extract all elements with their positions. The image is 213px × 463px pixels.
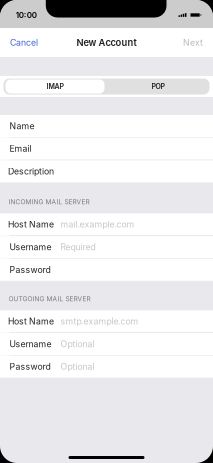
staticText: Username [10, 339, 52, 349]
button[interactable]: Host Name [0, 213, 213, 235]
staticText: IMAP [46, 82, 63, 91]
staticText: Optional [61, 339, 95, 349]
button[interactable]: Host Name [0, 310, 213, 332]
staticText: INCOMING MAIL SERVER [9, 198, 90, 206]
staticText: Password [10, 265, 51, 275]
button[interactable]: Email [0, 138, 213, 160]
button[interactable]: POP [106, 78, 209, 94]
staticText: Next [183, 37, 203, 48]
button[interactable]: Password [0, 259, 213, 281]
button[interactable]: Username [0, 333, 213, 355]
staticText: Optional [61, 361, 95, 372]
staticText: Required [61, 242, 96, 252]
staticText: Username [10, 242, 52, 252]
staticText: 10:00 [16, 10, 37, 20]
staticText: Host Name [8, 219, 54, 230]
staticText: Password [10, 361, 51, 372]
button[interactable]: Name [0, 115, 213, 137]
staticText: Host Name [8, 316, 54, 327]
button[interactable]: Cancel [0, 28, 48, 57]
staticText: mail.example.com [61, 219, 135, 230]
staticText: Name [10, 121, 35, 131]
button[interactable]: Next [173, 28, 213, 57]
button[interactable]: Username [0, 236, 213, 258]
button[interactable]: IMAP [3, 78, 106, 94]
staticText: New Account [76, 37, 136, 48]
staticText: Email [10, 143, 32, 154]
staticText: POP [151, 82, 164, 91]
button[interactable]: Password [0, 356, 213, 378]
staticText: smtp.example.com [61, 316, 139, 327]
staticText: Description [8, 166, 54, 177]
button[interactable]: Description [0, 160, 213, 182]
staticText: OUTGOING MAIL SERVER [9, 295, 91, 303]
staticText: Cancel [10, 37, 38, 48]
